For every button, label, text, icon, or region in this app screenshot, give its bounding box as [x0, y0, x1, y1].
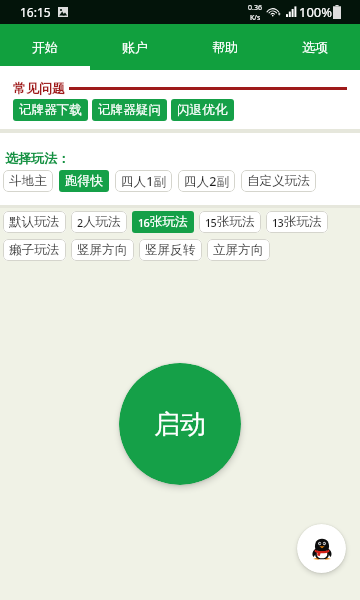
button[interactable]: 帮助 — [180, 24, 270, 70]
button[interactable]: 竖屏反转 — [139, 239, 202, 261]
staticText: 记牌器下载 — [19, 102, 82, 118]
button[interactable]: 开始 — [0, 24, 90, 70]
staticText: 张玩法 — [217, 214, 255, 230]
button[interactable]: 自定义玩法 — [241, 170, 316, 192]
staticText: 0.36 — [248, 3, 262, 13]
staticText: 16:15 — [20, 4, 51, 20]
button[interactable]: 13 — [266, 211, 328, 233]
staticText: 竖屏反转 — [145, 242, 196, 258]
staticText: 四人2副 — [184, 173, 229, 190]
staticText: 跑得快 — [65, 173, 103, 189]
staticText: 15 — [205, 215, 217, 230]
staticText: 13 — [272, 215, 284, 230]
staticText: K/s — [250, 13, 261, 23]
button[interactable]: 竖屏方向 — [71, 239, 134, 261]
staticText: 斗地主 — [9, 173, 47, 189]
staticText: 16 — [138, 215, 150, 230]
staticText: 竖屏方向 — [77, 242, 128, 258]
button[interactable]: 启动 — [119, 363, 241, 485]
button[interactable]: 默认玩法 — [3, 211, 66, 233]
button[interactable]: 选项 — [270, 24, 360, 70]
button[interactable]: 2 — [71, 211, 127, 233]
button[interactable]: 16 — [132, 211, 194, 233]
staticText: 闪退优化 — [177, 102, 228, 118]
button[interactable]: 癞子玩法 — [3, 239, 66, 261]
staticText: 人玩法 — [83, 214, 121, 230]
staticText: 帮助 — [212, 39, 238, 55]
staticText: 启动 — [154, 408, 206, 441]
staticText: 选项 — [302, 39, 328, 55]
button[interactable]: 立屏方向 — [207, 239, 270, 261]
button[interactable]: 四人2副 — [178, 170, 235, 192]
button[interactable]: 跑得快 — [59, 170, 109, 192]
staticText: 自定义玩法 — [247, 173, 310, 189]
button[interactable]: 四人1副 — [115, 170, 172, 192]
staticText: 常见问题 — [13, 80, 65, 96]
staticText: 账户 — [122, 39, 148, 55]
staticText: 2 — [77, 215, 83, 230]
staticText: 四人1副 — [121, 173, 166, 190]
staticText: 癞子玩法 — [9, 242, 60, 258]
button[interactable]: 15 — [199, 211, 261, 233]
button[interactable]: QQ — [297, 524, 346, 573]
staticText: 开始 — [32, 39, 58, 55]
button[interactable]: 斗地主 — [3, 170, 53, 192]
button[interactable]: 记牌器疑问 — [92, 99, 167, 121]
staticText: 选择玩法： — [5, 150, 70, 166]
staticText: 张玩法 — [284, 214, 322, 230]
staticText: 默认玩法 — [9, 214, 60, 230]
button[interactable]: 账户 — [90, 24, 180, 70]
staticText: 立屏方向 — [213, 242, 264, 258]
staticText: 记牌器疑问 — [98, 102, 161, 118]
button[interactable]: 记牌器下载 — [13, 99, 88, 121]
button[interactable]: 闪退优化 — [171, 99, 234, 121]
staticText: 张玩法 — [150, 214, 188, 230]
staticText: 100% — [299, 3, 333, 21]
